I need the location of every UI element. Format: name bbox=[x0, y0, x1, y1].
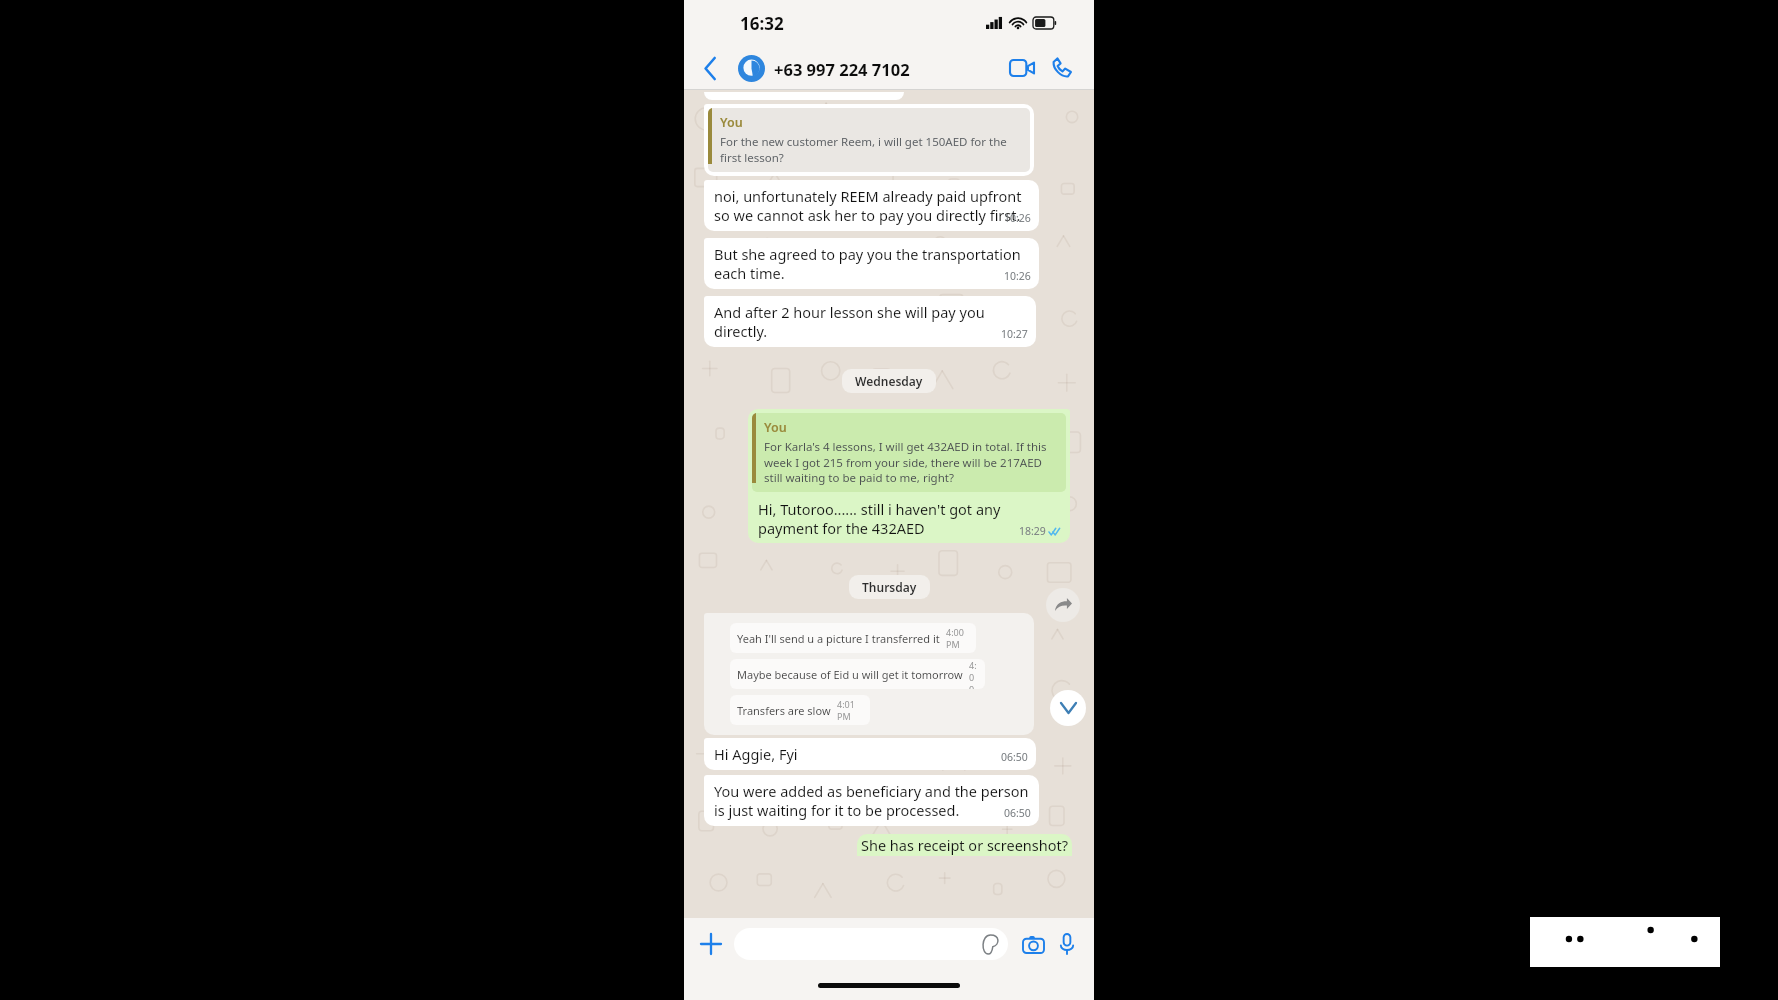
staticText: 18:29 bbox=[1019, 524, 1046, 538]
button[interactable]: Voice call bbox=[1042, 48, 1082, 88]
staticText: She has receipt or screenshot? bbox=[861, 835, 1069, 855]
staticText: Thursday bbox=[862, 579, 917, 595]
button[interactable]: Video call bbox=[1002, 48, 1042, 88]
button[interactable]: Forward bbox=[1046, 588, 1080, 622]
staticText: 10:26 bbox=[1004, 211, 1031, 225]
staticText: noi, unfortunately REEM already paid upf… bbox=[714, 186, 1031, 225]
button[interactable]: Back bbox=[694, 52, 726, 84]
staticText: For the new customer Reem, i will get 15… bbox=[720, 134, 1024, 165]
button[interactable]: +63 997 224 7102 bbox=[738, 55, 1002, 82]
staticText: You bbox=[764, 419, 787, 436]
staticText: 10:26 bbox=[1004, 269, 1031, 283]
staticText: You were added as beneficiary and the pe… bbox=[714, 781, 1031, 820]
staticText: Transfers are slow bbox=[737, 703, 831, 718]
button[interactable]: And after 2 hour lesson she will pay you… bbox=[704, 296, 1036, 347]
button[interactable]: You bbox=[748, 409, 1070, 543]
staticText: Hi Aggie, Fyi bbox=[714, 744, 798, 764]
staticText: 06:50 bbox=[1004, 806, 1031, 820]
staticText: Hi, Tutoroo...... still i haven't got an… bbox=[758, 499, 1010, 538]
staticText: 4:00 PM bbox=[946, 626, 969, 650]
other: Stickers bbox=[981, 935, 1000, 954]
staticText: 4:01 PM bbox=[837, 698, 863, 722]
staticText: But she agreed to pay you the transporta… bbox=[714, 244, 1031, 283]
button[interactable]: Scroll to bottom bbox=[1050, 690, 1086, 726]
button[interactable]: Stickers bbox=[734, 928, 1008, 960]
button[interactable]: She has receipt or screenshot? bbox=[857, 834, 1072, 856]
button[interactable]: Yeah I'll send u a picture I transferred… bbox=[704, 613, 1034, 735]
staticText: You bbox=[720, 114, 743, 131]
button[interactable]: noi, unfortunately REEM already paid upf… bbox=[704, 180, 1039, 231]
button[interactable]: You were added as beneficiary and the pe… bbox=[704, 775, 1039, 826]
staticText: 06:50 bbox=[1001, 750, 1028, 764]
staticText: And after 2 hour lesson she will pay you… bbox=[714, 302, 1028, 341]
button[interactable]: Attach bbox=[694, 927, 728, 961]
button[interactable]: Camera bbox=[1016, 927, 1050, 961]
button[interactable]: But she agreed to pay you the transporta… bbox=[704, 238, 1039, 289]
staticText: Maybe because of Eid u will get it tomor… bbox=[737, 667, 963, 682]
staticText: For Karla's 4 lessons, I will get 432AED… bbox=[764, 439, 1060, 485]
staticText: 16:32 bbox=[740, 12, 784, 35]
staticText: Yeah I'll send u a picture I transferred… bbox=[737, 631, 940, 646]
staticText: 10:27 bbox=[1001, 327, 1028, 341]
staticText: +63 997 224 7102 bbox=[774, 58, 910, 80]
button[interactable]: Hi Aggie, Fyi bbox=[704, 738, 1036, 770]
staticText: 4:00 PM bbox=[969, 659, 978, 689]
button[interactable]: You bbox=[704, 104, 1034, 176]
button[interactable]: Voice message bbox=[1050, 927, 1084, 961]
staticText: Wednesday bbox=[855, 373, 923, 389]
